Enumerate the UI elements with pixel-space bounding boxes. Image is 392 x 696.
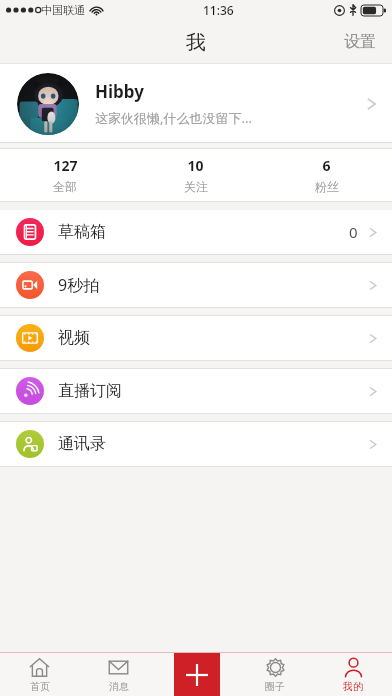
button[interactable]: 6 <box>261 148 392 202</box>
button[interactable]: 消息 <box>79 653 158 696</box>
staticText: 消息 <box>109 680 129 693</box>
staticText: 直播订阅 <box>58 381 122 401</box>
button[interactable]: 首页 <box>0 653 79 696</box>
staticText: 我的 <box>343 680 363 693</box>
staticText: Hibby <box>95 80 144 103</box>
staticText: 设置 <box>344 32 376 52</box>
staticText: 草稿箱 <box>58 222 106 242</box>
button[interactable]: 设置 <box>328 20 392 64</box>
staticText: 10 <box>187 156 204 175</box>
staticText: 视频 <box>58 328 90 348</box>
staticText: 中国联通 <box>41 3 85 17</box>
staticText: 127 <box>53 156 78 175</box>
staticText: 通讯录 <box>58 434 106 454</box>
button[interactable]: 草稿箱 <box>0 210 392 254</box>
staticText: 全部 <box>53 179 77 194</box>
staticText: 11:36 <box>203 2 234 18</box>
button[interactable]: 我的 <box>314 653 392 696</box>
staticText: 关注 <box>184 179 208 194</box>
staticText: 0 <box>349 222 358 242</box>
button[interactable]: 视频 <box>0 316 392 360</box>
button[interactable]: 127 <box>0 148 130 202</box>
staticText: 首页 <box>30 680 50 693</box>
staticText: 这家伙很懒,什么也没留下... <box>95 109 252 127</box>
staticText: 粉丝 <box>315 179 339 194</box>
button[interactable]: 直播订阅 <box>0 369 392 413</box>
staticText: 9秒拍 <box>58 274 100 296</box>
button[interactable]: Hibby <box>0 64 392 143</box>
button[interactable]: 新建 <box>174 653 220 696</box>
staticText: 6 <box>322 156 331 175</box>
button[interactable]: 圈子 <box>236 653 314 696</box>
staticText: 我 <box>186 30 206 55</box>
staticText: 圈子 <box>265 680 285 693</box>
button[interactable]: 10 <box>130 148 261 202</box>
button[interactable]: 通讯录 <box>0 422 392 466</box>
button[interactable]: 9秒拍 <box>0 263 392 307</box>
